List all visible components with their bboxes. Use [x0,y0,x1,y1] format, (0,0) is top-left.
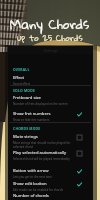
button[interactable]: Mute strings [8,132,93,146]
staticText: Fretboard size [13,95,41,101]
button[interactable]: Button with arrow [75,167,83,175]
button[interactable]: Number of chords [8,191,93,199]
button[interactable]: Play selected automatically [75,149,83,157]
staticText: Play selected automatically [13,150,67,156]
staticText: up to 25 Chords [17,29,83,46]
button[interactable]: Show fret numbers [75,110,83,118]
button[interactable]: Show edit button [75,180,83,188]
staticText: Show fret numbers [13,111,51,117]
staticText: SOLO MODE [13,88,36,93]
button[interactable]: Mute strings [75,133,83,141]
staticText: Show edit button [13,181,47,187]
staticText: OVERALL [13,67,30,72]
staticText: CHORDS MODE [13,126,41,131]
staticText: Show or hide fret numbers [13,118,50,122]
staticText: Effect [13,75,25,81]
button[interactable]: Show edit button [8,179,93,193]
button[interactable]: Fretboard size [8,93,93,107]
staticText: Edit mode can be enabled for chords [13,188,63,192]
staticText: Settings [44,48,58,53]
staticText: Number of chords [13,193,49,199]
staticText: Button with arrow [13,168,49,174]
staticText: Lets you get to the next tone [13,175,52,179]
staticText: Mute strings [13,134,38,140]
button[interactable]: Show fret numbers [8,109,93,123]
button[interactable]: Button with arrow [8,166,93,180]
staticText: Selected chord will be played immediatel… [13,157,70,161]
staticText: Sound effect [13,82,31,86]
button[interactable]: Play selected automatically [8,148,93,162]
staticText: Mute strings that should not be played f… [13,141,82,148]
staticText: Many Chords [10,11,90,37]
button[interactable]: Effect [8,73,93,87]
staticText: Number of frets displayed on the screen [13,102,68,106]
